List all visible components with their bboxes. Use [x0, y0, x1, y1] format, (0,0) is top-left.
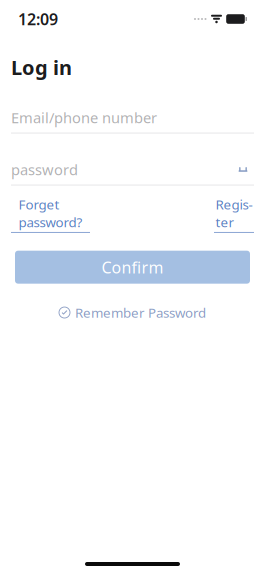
button[interactable]: Remember Password — [59, 304, 206, 321]
button[interactable]: Forget password? — [11, 196, 90, 233]
staticText: 12:09 — [18, 8, 58, 30]
staticText: Register — [215, 196, 252, 231]
staticText: Confirm — [101, 256, 163, 278]
staticText: Log in — [11, 54, 72, 81]
staticText: Forget password? — [18, 196, 82, 231]
staticText: password — [11, 160, 78, 179]
button[interactable]: Confirm — [15, 251, 250, 284]
button[interactable]: Register — [214, 196, 254, 233]
button[interactable]: Show password — [232, 159, 254, 181]
staticText: Remember Password — [75, 304, 206, 321]
staticText: Email/phone number — [11, 108, 157, 127]
